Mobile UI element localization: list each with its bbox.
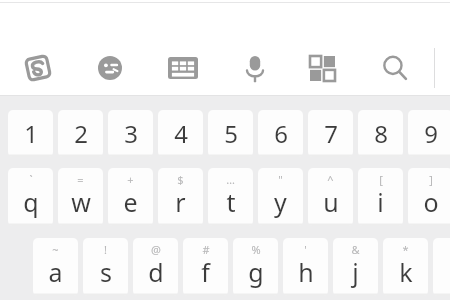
staticText: t: [226, 185, 236, 219]
staticText: w: [71, 185, 91, 219]
button[interactable]: Voice input: [233, 46, 277, 90]
staticText: ~: [52, 242, 59, 257]
staticText: y: [274, 185, 287, 219]
button[interactable]: *: [383, 238, 428, 296]
button[interactable]: Sogou input method: [16, 46, 60, 90]
button[interactable]: 5: [208, 110, 253, 157]
button[interactable]: `: [8, 168, 53, 226]
button[interactable]: 8: [358, 110, 403, 157]
button[interactable]: 7: [308, 110, 353, 157]
staticText: e: [123, 185, 138, 219]
button[interactable]: …: [208, 168, 253, 226]
staticText: #: [202, 242, 210, 257]
button[interactable]: !: [83, 238, 128, 296]
button[interactable]: 1: [8, 110, 53, 157]
staticText: 4: [174, 117, 188, 150]
button[interactable]: Keyboard layout: [161, 46, 205, 90]
staticText: g: [248, 255, 264, 289]
button[interactable]: ]: [408, 168, 450, 226]
button[interactable]: [: [358, 168, 403, 226]
staticText: &: [351, 242, 360, 257]
button[interactable]: $: [158, 168, 203, 226]
staticText: j: [352, 255, 359, 289]
staticText: %: [251, 242, 261, 257]
staticText: f: [201, 255, 210, 289]
staticText: o: [423, 185, 439, 219]
button[interactable]: ^: [308, 168, 353, 226]
button[interactable]: %: [233, 238, 278, 296]
staticText: q: [23, 185, 39, 219]
staticText: i: [377, 185, 384, 219]
button[interactable]: ": [433, 238, 450, 296]
button[interactable]: ~: [33, 238, 78, 296]
staticText: !: [104, 242, 107, 257]
button[interactable]: #: [183, 238, 228, 296]
staticText: ^: [327, 172, 334, 187]
button[interactable]: Search: [373, 46, 417, 90]
button[interactable]: +: [108, 168, 153, 226]
staticText: u: [323, 185, 339, 219]
staticText: d: [148, 255, 164, 289]
staticText: @: [151, 242, 161, 257]
staticText: 8: [374, 117, 388, 150]
staticText: =: [77, 172, 84, 187]
button[interactable]: 6: [258, 110, 303, 157]
button[interactable]: Emoji: [88, 46, 132, 90]
staticText: [: [379, 172, 383, 187]
button[interactable]: &: [333, 238, 378, 296]
staticText: *: [402, 242, 409, 257]
button[interactable]: 2: [58, 110, 103, 157]
staticText: `: [29, 172, 33, 187]
button[interactable]: 3: [108, 110, 153, 157]
staticText: 9: [424, 117, 438, 150]
staticText: …: [226, 172, 235, 187]
staticText: 7: [324, 117, 338, 150]
button[interactable]: More tools: [300, 46, 344, 90]
staticText: k: [399, 255, 413, 289]
staticText: ": [278, 172, 283, 187]
button[interactable]: ': [283, 238, 328, 296]
staticText: +: [127, 172, 134, 187]
staticText: ]: [429, 172, 433, 187]
button[interactable]: ": [258, 168, 303, 226]
button[interactable]: 9: [408, 110, 450, 157]
staticText: h: [298, 255, 314, 289]
staticText: 1: [24, 117, 38, 150]
staticText: 5: [224, 117, 238, 150]
staticText: a: [48, 255, 63, 289]
button[interactable]: 4: [158, 110, 203, 157]
staticText: $: [177, 172, 184, 187]
staticText: s: [100, 255, 112, 289]
staticText: 6: [274, 117, 288, 150]
button[interactable]: @: [133, 238, 178, 296]
staticText: 3: [124, 117, 138, 150]
button[interactable]: =: [58, 168, 103, 226]
staticText: 2: [74, 117, 88, 150]
staticText: r: [175, 185, 186, 219]
staticText: ': [304, 242, 307, 257]
